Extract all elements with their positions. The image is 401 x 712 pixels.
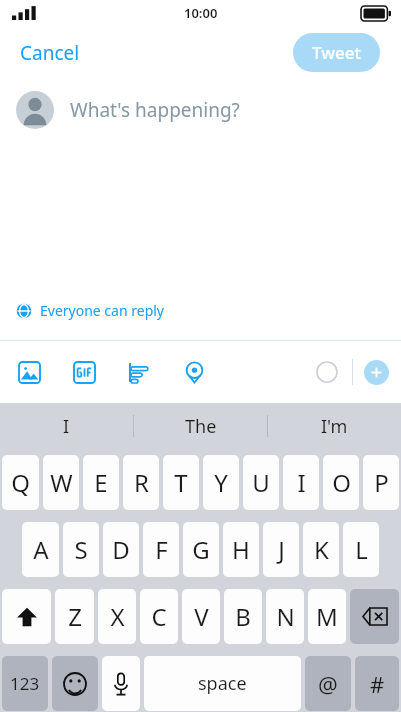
button[interactable]: I bbox=[283, 455, 319, 510]
button[interactable]: O bbox=[323, 455, 359, 510]
button[interactable]: Y bbox=[203, 455, 239, 510]
button[interactable]: J bbox=[263, 522, 299, 577]
staticText: H bbox=[232, 533, 250, 566]
staticText: P bbox=[374, 466, 389, 499]
staticText: O bbox=[332, 466, 351, 499]
button[interactable]: X bbox=[98, 589, 136, 644]
staticText: S bbox=[74, 533, 88, 566]
staticText: V bbox=[194, 600, 209, 633]
button[interactable]: E bbox=[83, 455, 119, 510]
button[interactable]: G bbox=[183, 522, 219, 577]
staticText: K bbox=[314, 533, 329, 566]
button[interactable]: K bbox=[303, 522, 339, 577]
staticText: Cancel bbox=[20, 40, 80, 66]
button[interactable]: Backspace bbox=[350, 589, 399, 644]
button[interactable]: Dictation bbox=[102, 656, 140, 711]
button[interactable]: F bbox=[143, 522, 179, 577]
button[interactable]: Everyone can reply bbox=[16, 299, 170, 322]
staticText: Tweet bbox=[312, 41, 361, 64]
button[interactable]: Emoji bbox=[52, 656, 98, 711]
staticText: F bbox=[155, 533, 168, 566]
button[interactable]: Profile picture bbox=[16, 91, 54, 129]
button[interactable]: H bbox=[223, 522, 259, 577]
staticText: Q bbox=[11, 466, 30, 499]
button[interactable]: R bbox=[123, 455, 159, 510]
button[interactable]: Add poll bbox=[124, 357, 154, 387]
button[interactable]: W bbox=[43, 455, 79, 510]
button[interactable]: V bbox=[182, 589, 220, 644]
button[interactable]: Add tweet bbox=[364, 360, 389, 385]
button[interactable]: M bbox=[308, 589, 346, 644]
staticText: B bbox=[235, 600, 251, 633]
staticText: U bbox=[252, 466, 270, 499]
staticText: W bbox=[50, 466, 73, 499]
button[interactable]: Z bbox=[55, 589, 94, 644]
button[interactable]: Add GIF bbox=[69, 357, 99, 387]
staticText: L bbox=[355, 533, 368, 566]
staticText: @ bbox=[318, 669, 338, 699]
staticText: Y bbox=[214, 466, 228, 499]
button[interactable]: The bbox=[134, 403, 267, 449]
staticText: X bbox=[110, 600, 125, 633]
staticText: R bbox=[134, 466, 149, 499]
button[interactable]: Q bbox=[2, 455, 39, 510]
staticText: J bbox=[278, 533, 285, 566]
button[interactable]: Add photo bbox=[14, 357, 44, 387]
staticText: I bbox=[297, 466, 306, 499]
button[interactable]: C bbox=[140, 589, 178, 644]
staticText: Z bbox=[68, 600, 82, 633]
button[interactable]: N bbox=[266, 589, 304, 644]
button[interactable]: I'm bbox=[268, 403, 401, 449]
staticText: Everyone can reply bbox=[40, 301, 164, 320]
staticText: C bbox=[151, 600, 167, 633]
staticText: 10:00 bbox=[184, 4, 218, 22]
button[interactable]: Character count bbox=[312, 357, 342, 387]
staticText: 123 bbox=[10, 672, 40, 695]
button[interactable]: D bbox=[103, 522, 139, 577]
staticText: E bbox=[94, 466, 108, 499]
button[interactable]: T bbox=[163, 455, 199, 510]
staticText: G bbox=[192, 533, 210, 566]
button[interactable]: 123 bbox=[2, 656, 48, 711]
staticText: I bbox=[63, 414, 70, 439]
button[interactable]: B bbox=[224, 589, 262, 644]
button[interactable]: # bbox=[355, 656, 399, 711]
button[interactable]: I bbox=[0, 403, 133, 449]
button[interactable]: Add location bbox=[179, 357, 209, 387]
staticText: What's happening? bbox=[70, 97, 240, 123]
button[interactable]: Cancel bbox=[8, 34, 92, 72]
button[interactable]: A bbox=[22, 522, 59, 577]
button[interactable]: L bbox=[343, 522, 379, 577]
button[interactable]: P bbox=[363, 455, 399, 510]
button[interactable]: @ bbox=[305, 656, 351, 711]
staticText: M bbox=[316, 600, 338, 633]
button[interactable]: S bbox=[63, 522, 99, 577]
staticText: I'm bbox=[321, 414, 348, 439]
staticText: A bbox=[33, 533, 49, 566]
button[interactable]: Shift bbox=[2, 589, 51, 644]
button[interactable]: U bbox=[243, 455, 279, 510]
staticText: D bbox=[112, 533, 130, 566]
staticText: The bbox=[185, 414, 217, 439]
button[interactable]: Tweet bbox=[293, 33, 380, 72]
button[interactable]: space bbox=[144, 656, 301, 711]
staticText: # bbox=[370, 669, 385, 699]
staticText: space bbox=[198, 671, 247, 696]
staticText: N bbox=[276, 600, 295, 633]
staticText: T bbox=[174, 466, 188, 499]
